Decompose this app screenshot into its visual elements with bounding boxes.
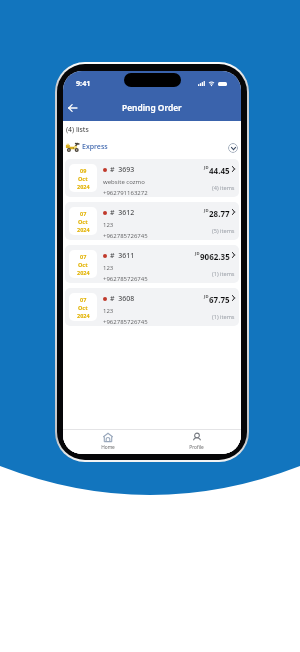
- staticText: (4) lists: [66, 125, 89, 134]
- staticText: 28.77: [209, 208, 230, 219]
- staticText: JD: [204, 294, 209, 300]
- staticText: Profile: [189, 444, 204, 451]
- staticText: Oct: [78, 261, 88, 268]
- staticText: JD: [204, 165, 209, 171]
- staticText: +962785726745: [103, 232, 148, 240]
- staticText: website cozmo: [103, 178, 145, 186]
- button[interactable]: 07: [65, 288, 239, 326]
- staticText: 09: [80, 167, 87, 174]
- staticText: # 3693: [110, 165, 135, 175]
- staticText: JD: [195, 251, 200, 257]
- staticText: 07: [80, 253, 87, 260]
- staticText: Express: [82, 142, 108, 152]
- staticText: 44.45: [209, 165, 230, 176]
- staticText: 123: [103, 307, 114, 315]
- button[interactable]: 07: [65, 245, 239, 283]
- button[interactable]: Home: [63, 430, 152, 454]
- button[interactable]: Back: [64, 99, 81, 116]
- staticText: JD: [204, 208, 209, 214]
- staticText: +962785726745: [103, 275, 148, 283]
- staticText: 07: [80, 296, 87, 303]
- button[interactable]: Profile: [152, 430, 241, 454]
- staticText: Oct: [78, 304, 88, 311]
- staticText: 123: [103, 221, 114, 229]
- staticText: 123: [103, 264, 114, 272]
- staticText: Home: [101, 444, 115, 451]
- staticText: Oct: [78, 175, 88, 182]
- staticText: 67.75: [209, 294, 230, 305]
- staticText: 2024: [77, 183, 90, 190]
- staticText: Oct: [78, 218, 88, 225]
- button[interactable]: 09: [65, 159, 239, 197]
- staticText: +962785726745: [103, 318, 148, 326]
- staticText: # 3611: [110, 251, 135, 261]
- staticText: 9062.35: [200, 251, 230, 262]
- staticText: 2024: [77, 312, 90, 319]
- staticText: (4) items: [212, 184, 235, 192]
- staticText: (1) items: [212, 313, 235, 321]
- staticText: 2024: [77, 226, 90, 233]
- staticText: 07: [80, 210, 87, 217]
- staticText: (1) items: [212, 270, 235, 278]
- staticText: # 3612: [110, 208, 135, 218]
- staticText: Pending Order: [122, 102, 182, 113]
- staticText: (5) items: [212, 227, 235, 235]
- button[interactable]: Expand: [228, 143, 238, 153]
- staticText: # 3608: [110, 294, 135, 304]
- staticText: 2024: [77, 269, 90, 276]
- staticText: +962791163272: [103, 189, 148, 197]
- button[interactable]: 07: [65, 202, 239, 240]
- staticText: 9:41: [76, 78, 91, 88]
